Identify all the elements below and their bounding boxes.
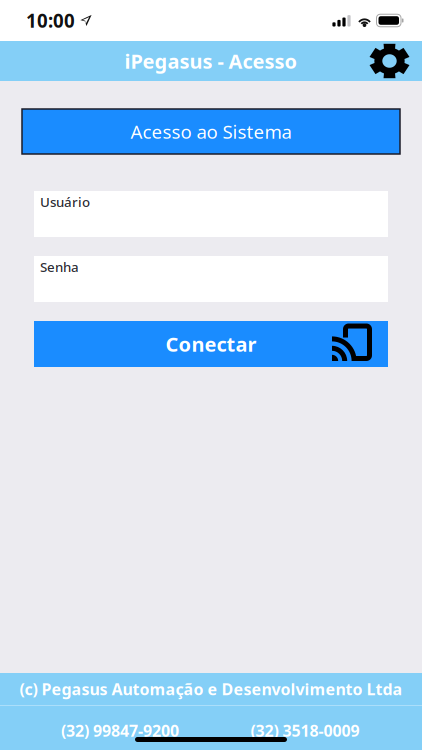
staticText: (32) 3518-0009 bbox=[250, 720, 359, 741]
button[interactable]: (32) 99847-9200 bbox=[52, 716, 188, 744]
button[interactable]: Settings bbox=[369, 43, 422, 79]
staticText: Conectar bbox=[165, 331, 256, 357]
staticText: 10:00 bbox=[26, 8, 75, 33]
staticText: (32) 99847-9200 bbox=[61, 720, 179, 741]
staticText: (c) Pegasus Automação e Desenvolvimento … bbox=[19, 678, 402, 700]
staticText: Usuário bbox=[40, 193, 90, 211]
button[interactable]: Conectar bbox=[34, 321, 388, 367]
staticText: Acesso ao Sistema bbox=[130, 119, 291, 144]
button[interactable]: Acesso ao Sistema bbox=[22, 109, 400, 154]
button[interactable]: (32) 3518-0009 bbox=[240, 716, 370, 744]
staticText: Senha bbox=[40, 258, 79, 276]
staticText: iPegasus - Acesso bbox=[124, 48, 297, 74]
